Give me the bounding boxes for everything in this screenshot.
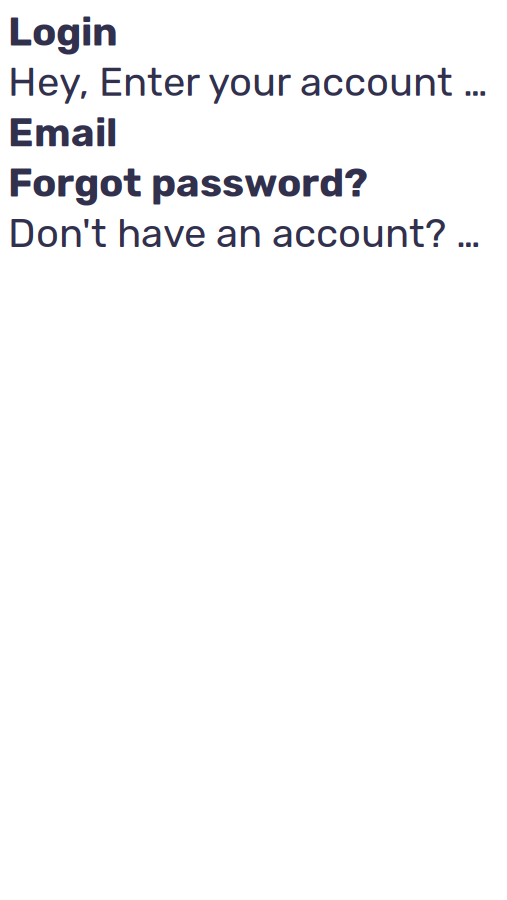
staticText: Don't have an account? Create here xyxy=(8,210,499,257)
staticText: Forgot password? xyxy=(8,159,368,207)
staticText: Hey, Enter your account credentials to g… xyxy=(8,58,499,106)
staticText: Login xyxy=(8,8,118,55)
staticText: Email xyxy=(8,109,117,156)
